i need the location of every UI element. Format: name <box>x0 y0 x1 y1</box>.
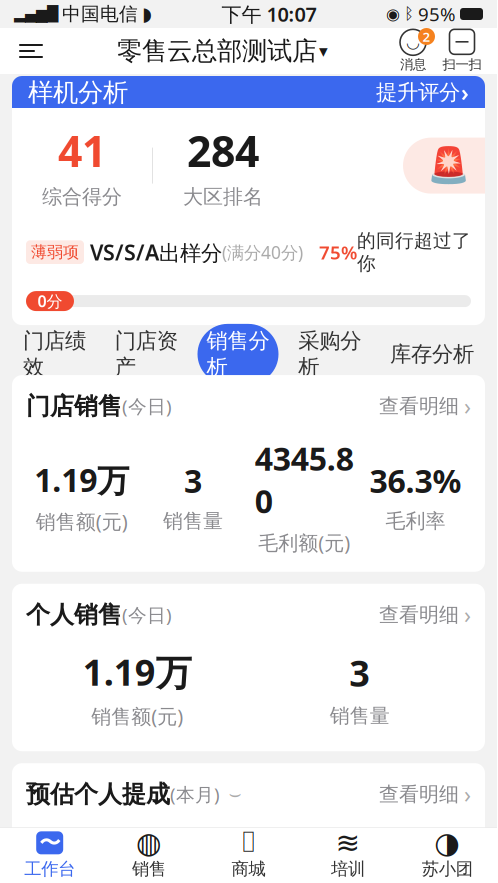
staticText: ᛒ <box>404 6 414 22</box>
staticText: 75% <box>319 240 357 265</box>
staticText: 下午 10:07 <box>221 1 316 27</box>
button[interactable]: 采购分析 <box>289 334 370 374</box>
staticText: ◗ <box>142 3 152 25</box>
staticText: 毛利率 <box>385 509 445 533</box>
staticText: › <box>464 779 471 809</box>
staticText: 查看明细 <box>379 602 459 627</box>
staticText: ⌷ <box>239 829 257 857</box>
staticText: 销售 <box>132 858 166 880</box>
staticText: 95% <box>418 2 456 26</box>
button[interactable]: 库存分析 <box>381 334 483 374</box>
staticText: 3 <box>349 649 370 697</box>
staticText: 4345.80 <box>255 437 354 522</box>
staticText: 提升评分 <box>376 79 460 105</box>
staticText: 培训 <box>331 858 365 880</box>
staticText: ◡ <box>406 33 420 51</box>
staticText: 的同行超过了你 <box>357 229 471 275</box>
staticText: 电器提成金额(元) <box>61 870 213 883</box>
staticText: 扫一扫 <box>442 56 481 73</box>
staticText: ◑ <box>434 826 460 859</box>
staticText: 工作台 <box>24 858 75 880</box>
staticText: 预估个人提成 <box>26 779 170 809</box>
staticText: 销售分析 <box>206 328 269 380</box>
staticText: ◉ <box>386 5 400 23</box>
staticText: 2 <box>422 28 430 45</box>
staticText: 综合得分 <box>42 185 122 209</box>
staticText: 销售额(元) <box>36 508 128 534</box>
staticText: 采购分析 <box>298 328 361 380</box>
staticText: 库存分析 <box>390 341 474 367</box>
button[interactable]: 扫一扫 <box>435 28 489 74</box>
button[interactable]: 〜 <box>0 828 99 883</box>
button[interactable]: ◑ <box>398 828 497 883</box>
button[interactable]: 门店资产 <box>106 334 187 374</box>
staticText: (今日) <box>122 602 172 627</box>
staticText: ⌣ <box>228 784 241 804</box>
button[interactable]: ≋ <box>298 828 398 883</box>
button[interactable]: 提升评分 <box>376 77 469 107</box>
staticText: VS/S/A出样分 <box>84 238 222 266</box>
button[interactable]: 门店绩效 <box>14 334 95 374</box>
staticText: 样机分析 <box>28 77 128 108</box>
staticText: 3 <box>184 459 202 502</box>
staticText: 41 <box>58 122 106 179</box>
staticText: ▂▄▆█ <box>14 6 58 22</box>
staticText: (本月) <box>170 782 220 807</box>
staticText: 〜 <box>39 830 60 856</box>
staticText: (今日) <box>122 394 172 418</box>
staticText: 薄弱项 <box>31 242 79 262</box>
staticText: 中国电信 <box>62 2 138 25</box>
staticText: 门店资产 <box>115 328 178 380</box>
staticText: 1.19万 <box>34 458 129 501</box>
button[interactable]: 销售分析 <box>197 334 278 374</box>
staticText: 1.19万 <box>83 648 192 696</box>
staticText: **** <box>332 829 388 863</box>
staticText: 商城 <box>231 858 265 880</box>
button[interactable]: 显示金额 <box>220 781 250 807</box>
button[interactable]: 查看明细 <box>379 600 471 630</box>
staticText: 销售量 <box>330 704 390 728</box>
staticText: 284 <box>187 122 259 179</box>
staticText: (满分40分) <box>222 241 303 264</box>
staticText: 🚨 <box>426 146 469 185</box>
staticText: ≋ <box>335 826 360 859</box>
staticText: 个人销售 <box>26 600 122 629</box>
staticText: ▾ <box>319 41 328 61</box>
button[interactable]: 菜单 <box>8 29 54 73</box>
staticText: 苏小团 <box>422 858 473 880</box>
button[interactable]: 查看明细 <box>379 391 471 421</box>
staticText: 毛利额(元) <box>258 529 350 556</box>
staticText: 销售额(元) <box>91 703 183 729</box>
staticText: 查看明细 <box>379 782 459 807</box>
staticText: 门店绩效 <box>23 328 86 380</box>
staticText: 销售量 <box>163 509 223 533</box>
button[interactable]: ⌷ <box>199 828 298 883</box>
staticText: › <box>464 391 471 421</box>
staticText: 查看明细 <box>379 394 459 418</box>
button[interactable]: 消息 <box>391 28 435 74</box>
staticText: 门店销售 <box>26 391 122 421</box>
button[interactable]: 零售云总部测试店 <box>117 29 328 73</box>
staticText: 消息 <box>400 56 426 73</box>
staticText: **** <box>109 829 165 863</box>
staticText: › <box>461 77 469 107</box>
button[interactable]: ◍ <box>99 828 199 883</box>
staticText: › <box>464 600 471 630</box>
button[interactable]: 查看明细 <box>379 779 471 809</box>
staticText: 36.3% <box>369 459 461 502</box>
staticText: 0分 <box>37 290 62 312</box>
staticText: ◍ <box>136 826 162 859</box>
staticText: 零售云总部测试店 <box>117 35 317 66</box>
staticText: 大区排名 <box>183 185 263 209</box>
staticText: 延保提成金额(元) <box>284 870 436 883</box>
